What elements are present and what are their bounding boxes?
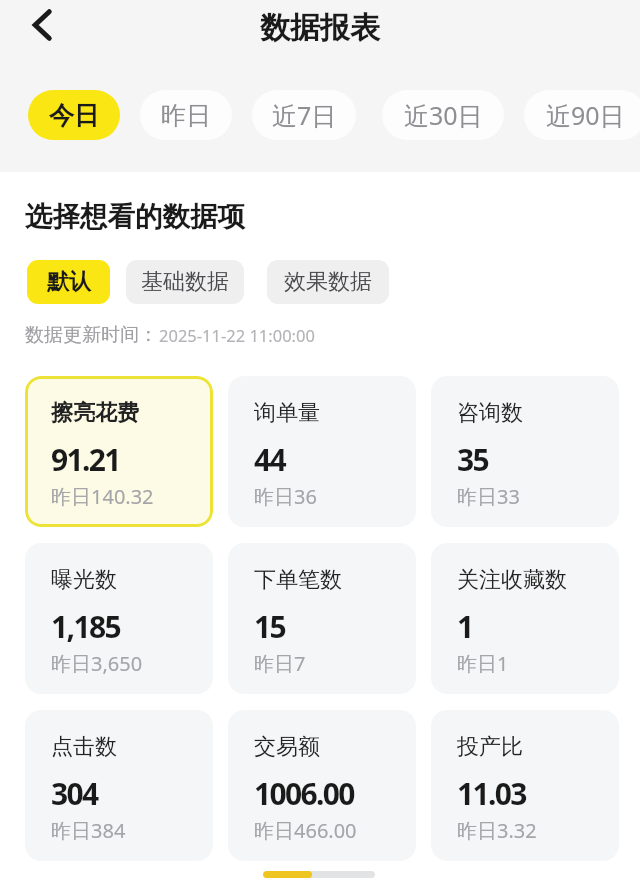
staticText: 近30日 — [404, 98, 483, 132]
staticText: 昨日3,650 — [51, 650, 143, 677]
staticText: 默认 — [47, 268, 91, 296]
staticText: 咨询数 — [457, 399, 523, 427]
staticText: 304 — [51, 773, 98, 814]
staticText: 15 — [254, 606, 286, 647]
staticText: 基础数据 — [141, 268, 229, 296]
staticText: 擦亮花费 — [51, 399, 139, 427]
staticText: 昨日466.00 — [254, 817, 357, 844]
staticText: 11.03 — [457, 773, 526, 814]
staticText: 昨日140.32 — [51, 483, 154, 510]
button[interactable]: 基础数据 — [126, 260, 244, 304]
staticText: 昨日33 — [457, 483, 520, 510]
button[interactable]: 默认 — [27, 260, 110, 304]
staticText: 近90日 — [546, 98, 625, 132]
button[interactable]: 投产比 — [431, 710, 619, 861]
button[interactable]: 近90日 — [524, 90, 640, 140]
staticText: 1,185 — [51, 606, 120, 647]
staticText: 昨日3.32 — [457, 817, 537, 844]
staticText: 44 — [254, 439, 286, 480]
button[interactable]: 询单量 — [228, 376, 416, 527]
staticText: 昨日1 — [457, 650, 509, 677]
staticText: 昨日384 — [51, 817, 126, 844]
staticText: 交易额 — [254, 733, 320, 761]
staticText: 下单笔数 — [254, 566, 342, 594]
staticText: 2025-11-22 11:00:00 — [159, 324, 315, 346]
staticText: 35 — [457, 439, 489, 480]
staticText: 数据更新时间： — [25, 323, 158, 347]
staticText: 昨日7 — [254, 650, 306, 677]
staticText: 效果数据 — [284, 268, 372, 296]
staticText: 数据报表 — [260, 9, 380, 47]
button[interactable]: 效果数据 — [267, 260, 389, 304]
staticText: 1006.00 — [254, 773, 354, 814]
button[interactable]: 今日 — [28, 90, 120, 140]
button[interactable]: 下单笔数 — [228, 543, 416, 694]
staticText: 昨日 — [161, 100, 211, 131]
staticText: 点击数 — [51, 733, 117, 761]
button[interactable]: 近30日 — [382, 90, 504, 140]
button[interactable]: 擦亮花费 — [25, 376, 213, 527]
button[interactable]: 关注收藏数 — [431, 543, 619, 694]
button[interactable]: 点击数 — [25, 710, 213, 861]
staticText: 询单量 — [254, 399, 320, 427]
staticText: 曝光数 — [51, 566, 117, 594]
staticText: 近7日 — [272, 98, 337, 132]
button[interactable]: 昨日 — [140, 90, 232, 140]
staticText: 选择想看的数据项 — [25, 200, 245, 235]
staticText: 今日 — [49, 100, 99, 131]
button[interactable]: 曝光数 — [25, 543, 213, 694]
staticText: 投产比 — [457, 733, 523, 761]
staticText: 昨日36 — [254, 483, 317, 510]
button[interactable]: 交易额 — [228, 710, 416, 861]
button[interactable]: 咨询数 — [431, 376, 619, 527]
staticText: 1 — [457, 606, 473, 647]
staticText: 关注收藏数 — [457, 566, 567, 594]
button[interactable]: 近7日 — [252, 90, 356, 140]
button[interactable]: Back — [15, 0, 71, 53]
staticText: 91.21 — [51, 439, 120, 480]
